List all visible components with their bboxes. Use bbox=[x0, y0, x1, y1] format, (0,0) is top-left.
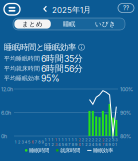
staticText: 22 bbox=[85, 137, 87, 147]
staticText: 6.0h bbox=[1, 109, 11, 116]
staticText: 25 bbox=[95, 137, 97, 147]
staticText: ?? bbox=[123, 4, 129, 12]
staticText: 27 bbox=[102, 137, 104, 147]
staticText: 17 bbox=[68, 137, 70, 147]
staticText: 2025年1月 bbox=[52, 5, 91, 15]
staticText: いびき bbox=[95, 20, 116, 28]
staticText: 15 bbox=[62, 137, 64, 147]
staticText: 9 bbox=[41, 140, 43, 144]
staticText: 30 bbox=[112, 137, 114, 147]
staticText: 12.0h bbox=[1, 86, 13, 92]
staticText: 8 bbox=[38, 140, 40, 144]
staticText: 睡眠時間と睡眠効率 bbox=[4, 42, 76, 52]
staticText: 就床時間 bbox=[60, 147, 80, 154]
staticText: 19 bbox=[75, 137, 77, 147]
staticText: 16 bbox=[65, 137, 67, 147]
staticText: 平均睡眠時間 bbox=[4, 55, 40, 62]
staticText: 28 bbox=[105, 137, 107, 147]
staticText: 睡眠効率 bbox=[93, 147, 113, 154]
staticText: 6時間35分 bbox=[41, 53, 83, 64]
staticText: 21 bbox=[82, 137, 84, 147]
staticText: 20 bbox=[78, 137, 80, 147]
staticText: 14 bbox=[58, 137, 60, 147]
staticText: 11 bbox=[48, 137, 50, 147]
button[interactable]: Previous month bbox=[40, 3, 50, 14]
staticText: 12 bbox=[52, 137, 54, 147]
staticText: 26 bbox=[98, 137, 100, 147]
staticText: 6時間56分 bbox=[41, 63, 83, 74]
staticText: 4 bbox=[25, 140, 27, 144]
button[interactable]: いびき bbox=[87, 19, 124, 29]
staticText: 5 bbox=[28, 140, 30, 144]
staticText: 平均就床時間 bbox=[4, 65, 40, 72]
staticText: 7 bbox=[35, 140, 37, 144]
staticText: 13 bbox=[55, 137, 57, 147]
staticText: 24 bbox=[92, 137, 94, 147]
staticText: 睡眠時間 bbox=[29, 147, 49, 154]
staticText: 31 bbox=[115, 137, 117, 147]
staticText: 6 bbox=[31, 140, 33, 144]
staticText: 29 bbox=[109, 137, 111, 147]
button[interactable]: Help bbox=[118, 3, 134, 12]
staticText: 0h bbox=[1, 133, 7, 139]
staticText: 80% bbox=[120, 133, 131, 139]
staticText: 睡眠 bbox=[63, 20, 75, 28]
button[interactable]: 睡眠 bbox=[51, 19, 87, 29]
staticText: 18 bbox=[72, 137, 74, 147]
staticText: 90% bbox=[120, 109, 131, 116]
button[interactable]: Summary bbox=[1, 0, 23, 18]
staticText: まとめ bbox=[22, 20, 43, 28]
staticText: 23 bbox=[88, 137, 90, 147]
staticText: 100% bbox=[120, 86, 133, 92]
staticText: 95% bbox=[41, 73, 60, 84]
staticText: 2 bbox=[18, 140, 20, 144]
staticText: 平均睡眠効率 bbox=[4, 75, 40, 82]
staticText: 1 bbox=[15, 140, 17, 144]
button[interactable]: まとめ bbox=[14, 19, 51, 29]
staticText: 10 bbox=[45, 137, 47, 147]
staticText: 3 bbox=[21, 140, 23, 144]
